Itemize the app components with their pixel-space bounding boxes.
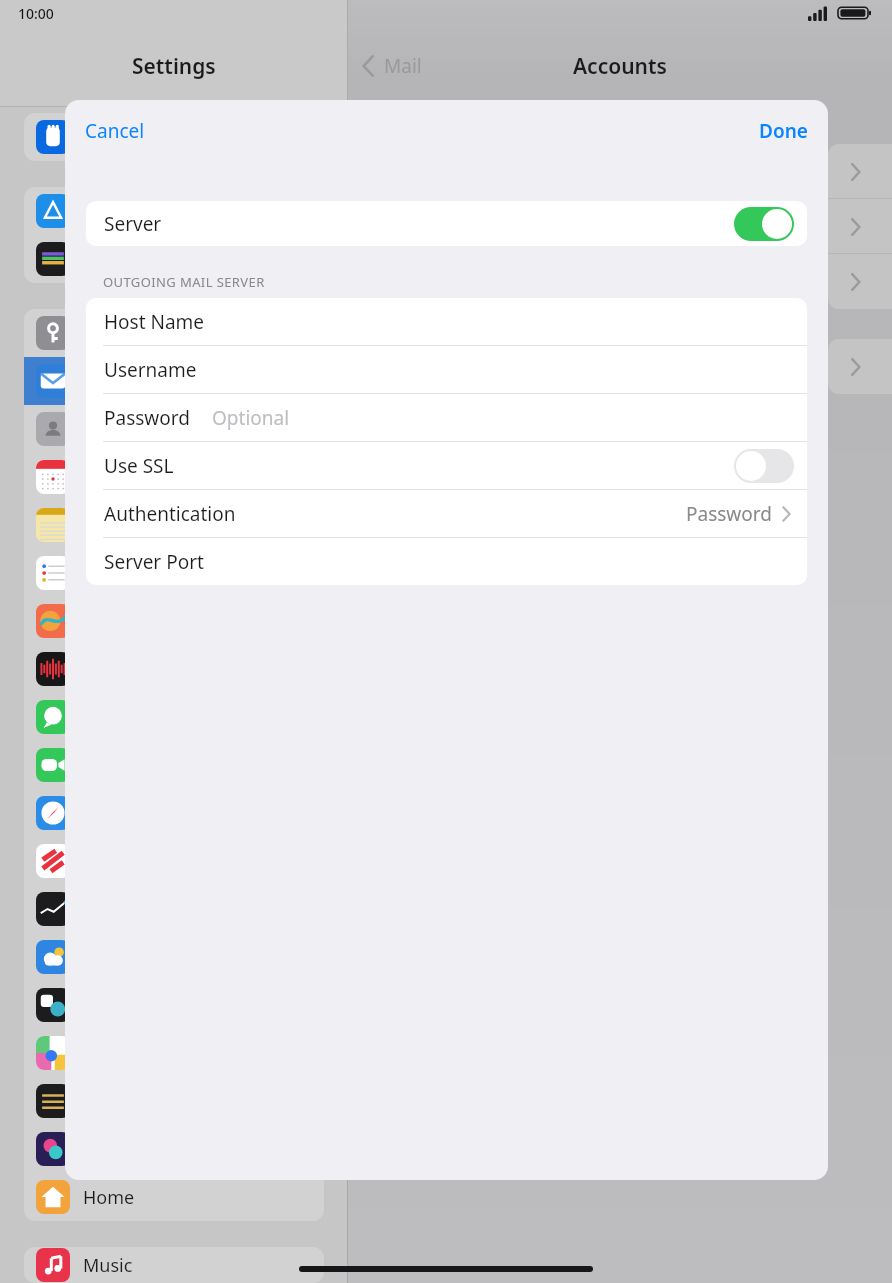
button[interactable]: Notes [24, 501, 324, 549]
button[interactable]: Translate [24, 981, 324, 1029]
button[interactable]: Off [734, 449, 794, 483]
staticText: Authentication [104, 501, 236, 527]
button[interactable]: Weather [24, 933, 324, 981]
button[interactable]: Mail [348, 53, 432, 79]
button[interactable]: Cancel [65, 110, 165, 152]
button[interactable]: On [734, 207, 794, 241]
button[interactable]: Home [24, 1173, 324, 1221]
staticText: Password [104, 405, 190, 431]
staticText: Contacts [83, 417, 157, 442]
button[interactable]: Shortcuts [24, 1125, 324, 1173]
button[interactable]: Reminders [24, 549, 324, 597]
button[interactable]: Authentication [86, 490, 807, 537]
staticText: Settings [132, 52, 216, 81]
staticText: Password [686, 501, 772, 527]
button[interactable]: Messages [24, 693, 324, 741]
button[interactable]: Passwords [24, 309, 324, 357]
button[interactable]: Wallet [24, 235, 324, 283]
button[interactable]: Stocks [24, 885, 324, 933]
button[interactable]: Freeform [24, 597, 324, 645]
button[interactable]: Server Port [86, 538, 807, 585]
staticText: App Store [83, 199, 166, 224]
staticText: Calendar [83, 465, 159, 490]
button[interactable]: Server [86, 201, 807, 246]
staticText: Host Name [104, 309, 205, 335]
staticText: Use SSL [104, 453, 174, 479]
button[interactable]: Maps [24, 1029, 324, 1077]
staticText: Optional [212, 405, 290, 431]
button[interactable]: Safari [24, 789, 324, 837]
staticText: Done [759, 118, 808, 144]
button[interactable]: Shortcuts2 [24, 1077, 324, 1125]
staticText: Music [83, 1253, 133, 1278]
button[interactable]: Mail [24, 357, 324, 405]
staticText: Accounts [573, 52, 667, 81]
button[interactable]: App Store [24, 187, 324, 235]
staticText: Home [83, 1185, 135, 1210]
staticText: Mail [83, 369, 119, 394]
staticText: Cancel [85, 118, 145, 144]
staticText: Notes [83, 513, 133, 538]
staticText: OUTGOING MAIL SERVER [103, 273, 265, 291]
button[interactable]: Password [86, 394, 807, 441]
staticText: Privacy & Security [83, 125, 234, 150]
button[interactable]: FaceTime [24, 741, 324, 789]
button[interactable]: Music [24, 1247, 324, 1283]
button[interactable]: News [24, 837, 324, 885]
button[interactable]: Use SSL [86, 442, 807, 489]
button[interactable]: Host Name [86, 298, 807, 345]
button[interactable]: Username [86, 346, 807, 393]
button[interactable]: Done [739, 110, 828, 152]
staticText: Passwords [83, 321, 174, 346]
staticText: 10:00 [18, 4, 54, 23]
staticText: Server Port [104, 549, 204, 575]
button[interactable]: Contacts [24, 405, 324, 453]
staticText: Username [104, 357, 197, 383]
button[interactable]: Privacy & Security [24, 113, 324, 161]
button[interactable]: Voice Memos [24, 645, 324, 693]
staticText: Mail [384, 53, 422, 79]
staticText: Reminders [83, 561, 175, 586]
button[interactable]: Calendar [24, 453, 324, 501]
staticText: Server [104, 211, 162, 237]
